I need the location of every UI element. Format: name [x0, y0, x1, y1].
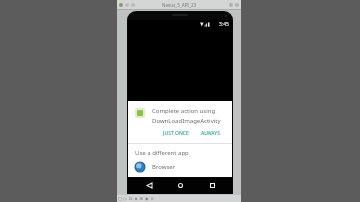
button[interactable]: Home [169, 177, 191, 194]
staticText: Nexus_5_API_23 [162, 2, 197, 8]
staticText: 3:45 [219, 21, 229, 28]
button[interactable]: ALWAYS [197, 128, 224, 139]
staticText: Browser [152, 163, 176, 171]
button[interactable]: Recent apps [201, 177, 223, 194]
staticText: DownLoadImageActivity [152, 117, 221, 125]
staticText: □ ▷ ⊡ ◈ ⊞ ◉ ⊙ [118, 196, 154, 201]
staticText: Use a different app [135, 149, 189, 157]
button[interactable]: JUST ONCE [159, 128, 193, 139]
staticText: JUST ONCE [163, 130, 189, 137]
button[interactable]: Back [138, 177, 160, 194]
button[interactable]: Browser [128, 160, 232, 177]
staticText: Complete action using [152, 107, 216, 115]
staticText: ALWAYS [201, 130, 220, 137]
